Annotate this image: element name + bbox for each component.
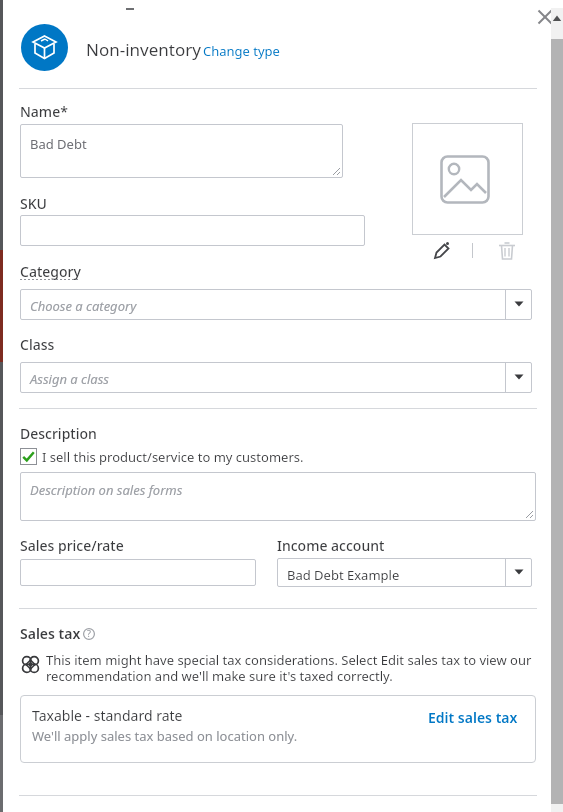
staticText: Taxable - standard rate — [32, 706, 183, 725]
staticText: Description on sales forms — [30, 481, 183, 499]
staticText: Change type — [203, 42, 280, 60]
staticText: Assign a class — [30, 370, 109, 388]
staticText: Sales price/rate — [20, 536, 124, 555]
staticText: Category — [20, 262, 81, 281]
staticText: ? — [87, 627, 91, 639]
button[interactable]: Edit sales tax — [424, 704, 514, 723]
button[interactable] — [412, 123, 523, 235]
button[interactable] — [277, 558, 532, 587]
staticText: Bad Debt Example — [287, 566, 400, 584]
staticText: recommendation and we'll make sure it's … — [46, 667, 393, 685]
staticText: Name* — [20, 102, 68, 121]
staticText: Class — [20, 335, 55, 354]
staticText: Edit sales tax — [428, 708, 518, 727]
staticText: Sales tax — [20, 624, 81, 643]
staticText: Non-inventory — [86, 38, 201, 61]
button[interactable] — [20, 289, 532, 320]
button[interactable] — [21, 24, 68, 71]
staticText: Bad Debt — [30, 135, 87, 153]
staticText: SKU — [20, 194, 47, 213]
staticText: Income account — [277, 536, 385, 555]
button[interactable] — [20, 215, 365, 246]
button[interactable] — [20, 448, 350, 466]
button[interactable] — [535, 7, 555, 27]
button[interactable]: Change type — [203, 42, 280, 60]
staticText: Description — [20, 424, 97, 443]
button[interactable] — [20, 362, 532, 393]
button[interactable] — [20, 472, 536, 521]
button[interactable] — [430, 239, 454, 263]
button[interactable] — [495, 239, 519, 263]
staticText: We'll apply sales tax based on location … — [32, 727, 298, 745]
staticText: I sell this product/service to my custom… — [42, 448, 304, 466]
button[interactable] — [20, 559, 256, 586]
staticText: Choose a category — [30, 297, 137, 315]
button[interactable] — [20, 124, 343, 178]
staticText: This item might have special tax conside… — [46, 651, 532, 669]
